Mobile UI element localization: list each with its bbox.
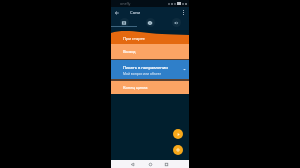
button[interactable]: Sound [163,18,189,27]
button[interactable]: Выход [111,44,189,59]
button[interactable]: Recents [161,160,171,168]
staticText: Мой вопрос или объект [123,71,162,75]
button[interactable]: При старте [111,35,189,44]
button[interactable]: Camera [137,18,163,27]
button[interactable]: Screen [111,18,137,27]
button[interactable]: Писать в направлении [111,60,189,79]
staticText: onefly [120,1,131,6]
button[interactable]: Play [173,129,183,139]
button[interactable]: Back [127,160,137,168]
button[interactable]: Add [173,145,183,155]
button[interactable]: Конец цикла [111,81,189,94]
staticText: Писать в направлении [123,65,168,70]
staticText: Выход [123,49,136,54]
button[interactable]: Back [112,8,122,18]
button[interactable]: Home [145,160,155,168]
staticText: Конец цикла [123,85,148,90]
staticText: Сани [130,10,141,16]
staticText: При старте [123,36,145,42]
button[interactable]: More options [179,8,188,17]
